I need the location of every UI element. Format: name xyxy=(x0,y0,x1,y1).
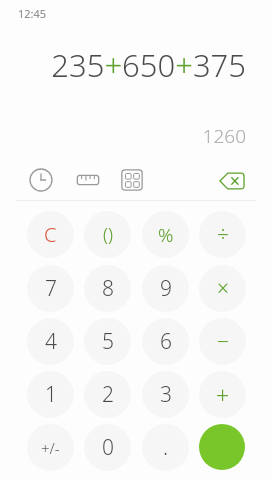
staticText: 4 xyxy=(45,327,57,356)
button[interactable]: History xyxy=(28,167,54,193)
button[interactable]: Backspace xyxy=(218,167,246,195)
staticText: 2 xyxy=(102,380,114,409)
staticText: 5 xyxy=(102,327,114,356)
button[interactable]: 9 xyxy=(142,265,189,312)
button[interactable]: 2 xyxy=(84,371,131,418)
button[interactable]: ÷ xyxy=(199,211,246,258)
button[interactable]: Unit converter xyxy=(75,167,101,193)
staticText: % xyxy=(158,222,174,248)
button[interactable]: () xyxy=(84,211,131,258)
button[interactable]: 8 xyxy=(84,265,131,312)
button[interactable]: 5 xyxy=(84,318,131,365)
button[interactable]: 4 xyxy=(27,318,74,365)
staticText: 3 xyxy=(160,380,172,409)
staticText: +/- xyxy=(41,438,60,458)
staticText: × xyxy=(217,274,229,303)
staticText: 0 xyxy=(102,433,114,462)
staticText: 235+650+375 xyxy=(0,44,246,86)
staticText: − xyxy=(217,327,229,356)
staticText: . xyxy=(163,433,169,462)
button[interactable]: 0 xyxy=(84,424,131,471)
button[interactable]: + xyxy=(199,371,246,418)
staticText: + xyxy=(216,379,230,410)
button[interactable]: 7 xyxy=(27,265,74,312)
button[interactable]: 1 xyxy=(27,371,74,418)
staticText: 7 xyxy=(45,274,57,303)
staticText: 12:45 xyxy=(18,6,47,21)
button[interactable]: % xyxy=(142,211,189,258)
button[interactable]: C xyxy=(27,211,74,258)
staticText: 6 xyxy=(160,327,172,356)
button[interactable] xyxy=(199,424,245,470)
staticText: 1 xyxy=(45,380,57,409)
staticText: 8 xyxy=(102,274,114,303)
button[interactable]: . xyxy=(142,424,189,471)
staticText: 9 xyxy=(160,274,172,303)
button[interactable]: × xyxy=(199,265,246,312)
staticText: 1260 xyxy=(0,123,246,149)
button[interactable]: 3 xyxy=(142,371,189,418)
staticText: () xyxy=(103,222,113,247)
button[interactable]: +/- xyxy=(27,424,74,471)
staticText: C xyxy=(44,221,57,248)
button[interactable]: Scientific calculator xyxy=(119,167,145,193)
staticText: ÷ xyxy=(217,220,229,249)
button[interactable]: 6 xyxy=(142,318,189,365)
button[interactable]: − xyxy=(199,318,246,365)
